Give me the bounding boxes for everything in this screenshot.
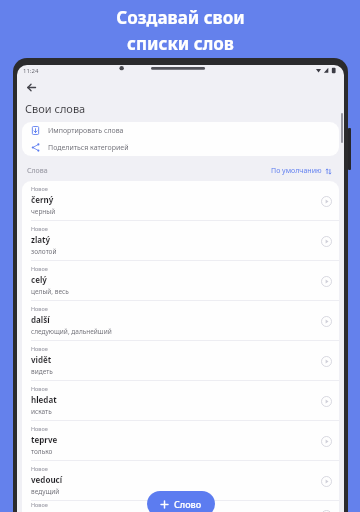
staticText: Новое: [31, 225, 48, 232]
staticText: следующий, дальнейший: [31, 327, 112, 336]
staticText: Новое: [31, 265, 48, 272]
staticText: видеть: [31, 367, 53, 376]
button[interactable]: Новое: [22, 221, 339, 260]
staticText: další: [31, 314, 50, 325]
staticText: только: [31, 447, 53, 456]
button[interactable]: Новое: [22, 421, 339, 460]
staticText: золотой: [31, 247, 57, 256]
button[interactable]: Новое: [22, 301, 339, 340]
button[interactable]: Новое: [22, 381, 339, 420]
button[interactable]: Play pronunciation: [319, 274, 333, 288]
staticText: искать: [31, 407, 52, 416]
button[interactable]: Новое: [22, 341, 339, 380]
staticText: hledat: [31, 394, 57, 405]
staticText: vedoucí: [31, 474, 63, 485]
button[interactable]: Новое: [22, 261, 339, 300]
button[interactable]: Play pronunciation: [319, 474, 333, 488]
button[interactable]: Новое: [22, 461, 339, 500]
staticText: Создавай свои: [116, 6, 245, 29]
button[interactable]: Play pronunciation: [319, 314, 333, 328]
button[interactable]: Новое: [22, 181, 339, 220]
staticText: Слова: [27, 166, 48, 176]
staticText: Новое: [31, 465, 48, 472]
staticText: celý: [31, 274, 47, 285]
staticText: Слово: [174, 498, 202, 510]
button[interactable]: Play pronunciation: [319, 434, 333, 448]
button[interactable]: Back: [22, 78, 40, 96]
button[interactable]: По умолчанию: [269, 166, 334, 176]
staticText: ведущий: [31, 487, 60, 496]
staticText: списки слов: [127, 32, 234, 55]
staticText: vidět: [31, 354, 52, 365]
button[interactable]: Play pronunciation: [319, 354, 333, 368]
staticText: Импортировать слова: [48, 126, 124, 136]
button[interactable]: Play pronunciation: [319, 234, 333, 248]
button[interactable]: Импортировать слова: [22, 122, 339, 139]
button[interactable]: Play pronunciation: [319, 394, 333, 408]
staticText: Новое: [31, 305, 48, 312]
staticText: По умолчанию: [271, 166, 322, 176]
staticText: 11:24: [23, 67, 39, 75]
button[interactable]: Слово: [147, 491, 215, 512]
staticText: целый, весь: [31, 287, 69, 296]
staticText: Свои слова: [25, 101, 86, 116]
staticText: черный: [31, 207, 56, 216]
button[interactable]: Новое: [22, 501, 339, 512]
staticText: černý: [31, 194, 54, 205]
button[interactable]: Play pronunciation: [319, 508, 333, 512]
button[interactable]: Play pronunciation: [319, 194, 333, 208]
staticText: Новое: [31, 345, 48, 352]
staticText: Новое: [31, 385, 48, 392]
staticText: Поделиться категорией: [48, 143, 129, 153]
staticText: Новое: [31, 185, 48, 192]
staticText: zlatý: [31, 234, 51, 245]
staticText: teprve: [31, 434, 58, 445]
button[interactable]: Поделиться категорией: [22, 139, 339, 156]
staticText: Новое: [31, 501, 48, 508]
staticText: Новое: [31, 425, 48, 432]
